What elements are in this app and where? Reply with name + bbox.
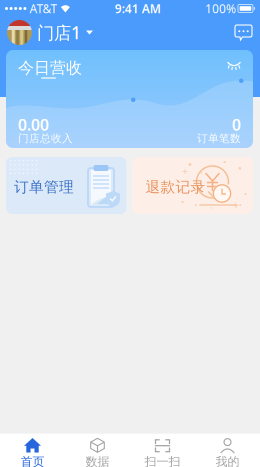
staticText: 首页	[20, 454, 44, 467]
staticText: 退款记录	[145, 178, 205, 196]
staticText: AT&T	[29, 0, 57, 16]
button[interactable]: 退款记录	[132, 157, 253, 214]
staticText: 数据	[85, 454, 109, 467]
button[interactable]: 首页	[0, 433, 65, 467]
button[interactable]: 我的	[195, 433, 260, 467]
staticText: 今日营收	[18, 58, 82, 78]
button[interactable]: 门店1	[7, 20, 93, 45]
staticText: 扫一扫	[144, 454, 180, 467]
staticText: 门店总收入	[18, 132, 73, 145]
staticText: 9:41 AM	[115, 0, 161, 16]
button[interactable]: Hide amount	[227, 58, 241, 70]
button[interactable]: 订单管理	[6, 157, 126, 214]
staticText: 订单笔数	[197, 132, 241, 145]
button[interactable]: Messages	[234, 24, 253, 41]
button[interactable]: 扫一扫	[130, 433, 195, 467]
button[interactable]: 数据	[65, 433, 130, 467]
staticText: 门店1	[37, 21, 81, 44]
staticText: 我的	[215, 454, 239, 467]
staticText: 0	[232, 114, 241, 135]
staticText: 100%	[205, 0, 236, 16]
staticText: 0.00	[18, 114, 49, 135]
staticText: 订单管理	[14, 178, 74, 196]
